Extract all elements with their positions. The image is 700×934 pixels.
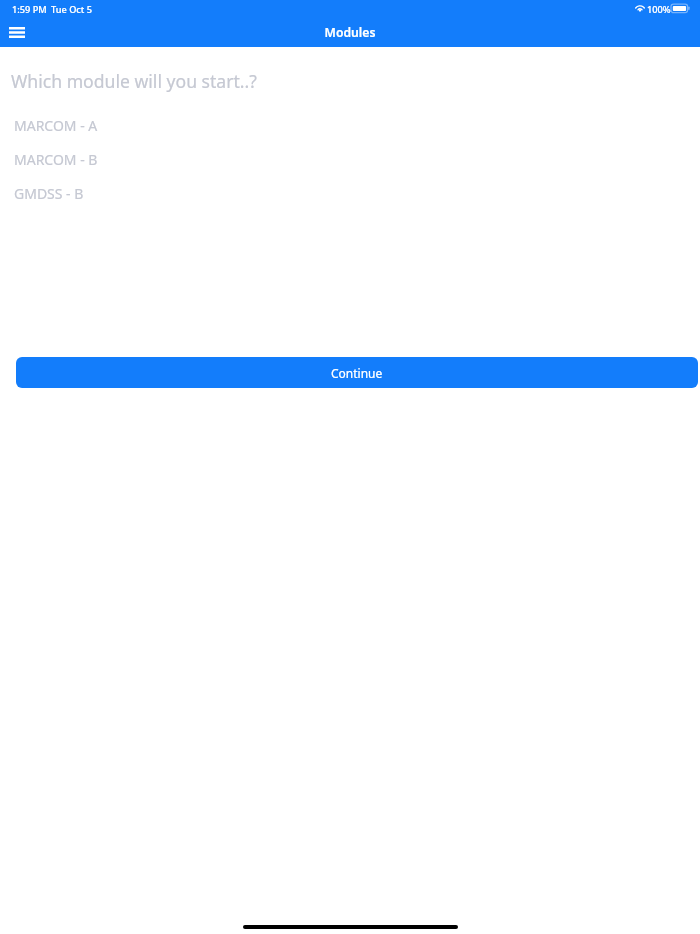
staticText: GMDSS - B [14,184,84,203]
staticText: Continue [331,365,383,381]
staticText: Tue Oct 5 [51,3,93,16]
staticText: 100% [647,3,671,16]
button[interactable]: MARCOM - A [0,110,700,140]
button[interactable]: Continue [16,357,698,388]
button[interactable]: Menu [1,16,33,48]
staticText: MARCOM - B [14,150,98,169]
staticText: Modules [0,24,700,41]
button[interactable]: MARCOM - B [0,144,700,174]
staticText: 1:59 PM [12,3,47,16]
button[interactable]: GMDSS - B [0,178,700,208]
staticText: Which module will you start..? [11,69,257,93]
staticText: MARCOM - A [14,116,98,135]
